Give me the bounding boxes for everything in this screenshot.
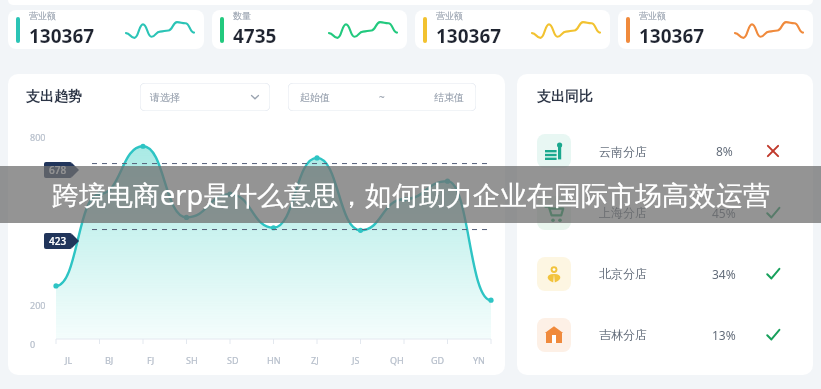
staticText: SH — [186, 354, 198, 366]
staticText: QH — [390, 354, 404, 366]
button[interactable]: 请选择 — [140, 83, 270, 111]
staticText: JL — [65, 354, 73, 366]
staticText: 吉林分店 — [599, 327, 647, 342]
button[interactable]: 数量 — [212, 10, 407, 49]
staticText: 北京分店 — [599, 266, 647, 281]
staticText: 结束值 — [434, 91, 464, 104]
staticText: 营业额 — [29, 10, 56, 21]
staticText: 营业额 — [639, 10, 666, 21]
staticText: GD — [431, 354, 445, 366]
staticText: 13% — [712, 327, 736, 343]
staticText: 云南分店 — [599, 144, 647, 159]
staticText: 34% — [712, 266, 736, 282]
other: Expand — [250, 92, 260, 102]
staticText: FJ — [147, 354, 155, 366]
button[interactable]: 上海分店 — [517, 182, 813, 243]
staticText: 130367 — [436, 23, 502, 49]
staticText: 800 — [30, 131, 46, 143]
button[interactable]: 起始值 — [288, 83, 476, 111]
staticText: SD — [227, 354, 239, 366]
button[interactable]: 北京分店 — [517, 243, 813, 304]
staticText: BJ — [105, 354, 114, 366]
staticText: HN — [267, 354, 281, 366]
button[interactable]: 营业额 — [8, 10, 204, 49]
button[interactable]: 营业额 — [415, 10, 610, 49]
staticText: 上海分店 — [599, 205, 647, 220]
staticText: 4735 — [233, 23, 277, 49]
staticText: 130367 — [639, 23, 705, 49]
staticText: 数量 — [233, 10, 251, 21]
staticText: ZJ — [311, 354, 319, 366]
button[interactable]: 吉林分店 — [517, 304, 813, 365]
button[interactable]: 营业额 — [618, 10, 813, 49]
staticText: 营业额 — [436, 10, 463, 21]
staticText: 423 — [49, 234, 67, 248]
staticText: 200 — [30, 299, 46, 311]
staticText: 130367 — [29, 23, 95, 49]
staticText: 请选择 — [150, 91, 180, 104]
staticText: 45% — [712, 205, 736, 221]
staticText: JS — [352, 354, 360, 366]
staticText: 起始值 — [300, 91, 330, 104]
button[interactable]: 云南分店 — [517, 120, 813, 182]
staticText: 678 — [49, 163, 67, 177]
staticText: 0 — [30, 338, 36, 350]
staticText: 支出同比 — [537, 88, 593, 106]
staticText: 支出趋势 — [26, 88, 82, 106]
staticText: 跨境电商erp是什么意思，如何助力企业在国际市场高效运营 — [52, 176, 770, 213]
staticText: ~ — [379, 90, 385, 104]
staticText: YN — [473, 354, 485, 366]
staticText: 8% — [716, 143, 733, 159]
